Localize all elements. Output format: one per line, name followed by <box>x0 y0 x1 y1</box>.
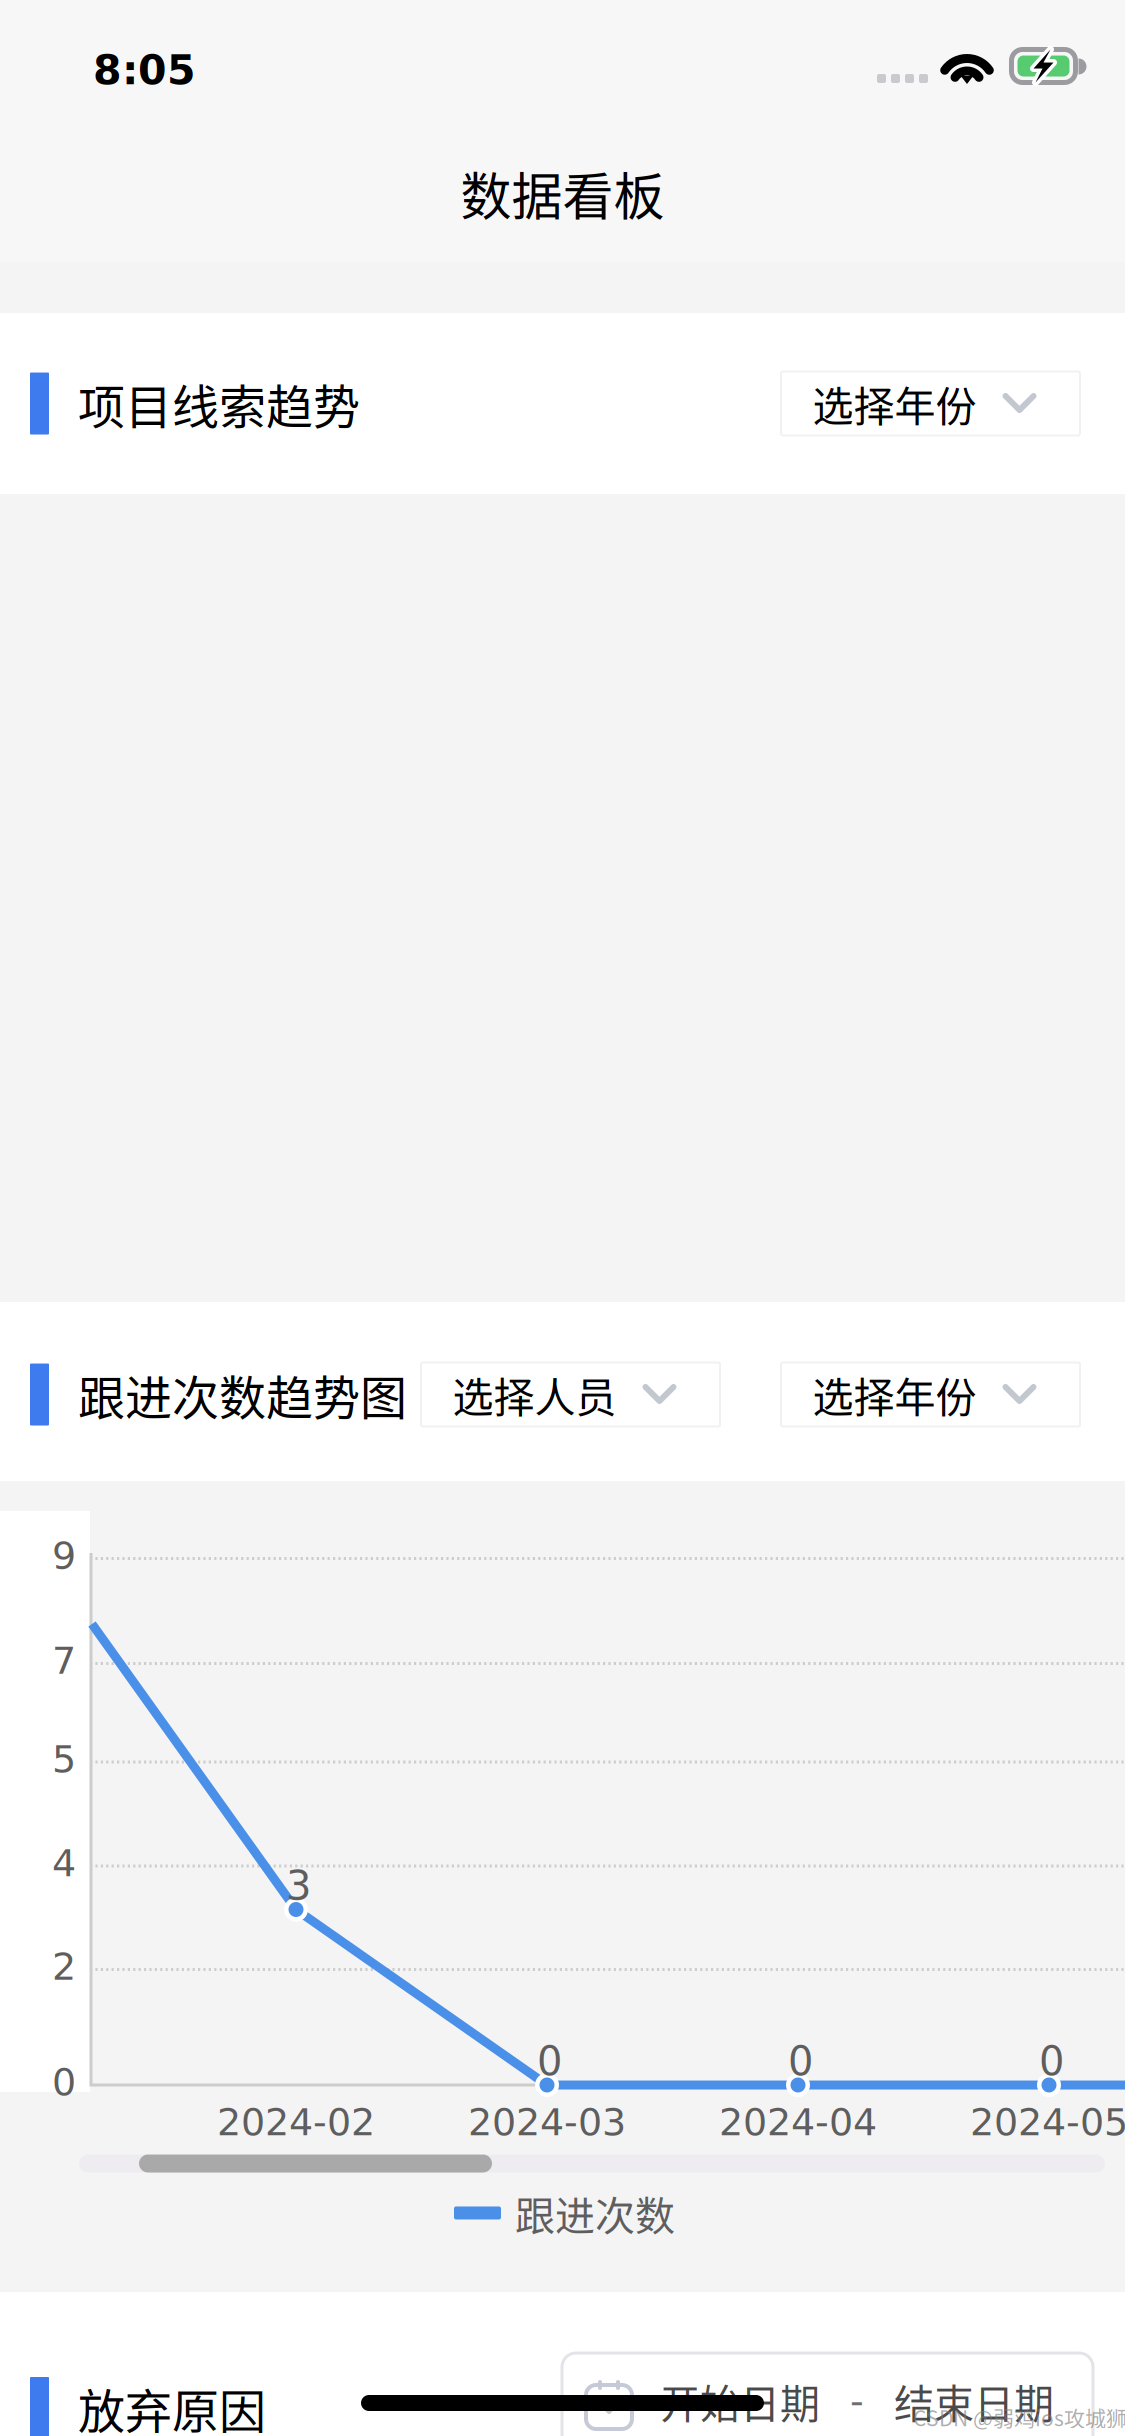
staticText: 放弃原因 <box>78 2374 266 2436</box>
button[interactable]: 开始日期 <box>562 2353 1093 2436</box>
staticText: 项目线索趋势 <box>78 369 360 438</box>
staticText: 0 <box>52 2060 76 2104</box>
staticText: 2024-05 <box>970 2100 1125 2144</box>
staticText: 2024-03 <box>468 2100 626 2144</box>
staticText: 2024-02 <box>217 2100 375 2144</box>
staticText: 结束日期 <box>894 2372 1054 2430</box>
staticText: 9 <box>52 1533 76 1578</box>
staticText: 跟进次数 <box>515 2184 675 2242</box>
staticText: 选择人员 <box>452 1365 616 1424</box>
staticText: CSDN @弱鸡ios攻城狮 <box>913 2402 1125 2432</box>
staticText: - <box>850 2379 864 2423</box>
staticText: 7 <box>52 1638 76 1683</box>
staticText: 8:05 <box>93 46 196 94</box>
staticText: 0 <box>788 2038 813 2085</box>
staticText: 2 <box>52 1944 76 1989</box>
staticText: 选择年份 <box>812 374 976 433</box>
staticText: 2024-04 <box>719 2100 877 2144</box>
staticText: 4 <box>52 1841 76 1885</box>
staticText: 开始日期 <box>660 2372 820 2430</box>
staticText: 数据看板 <box>460 156 664 230</box>
button[interactable]: 选择年份 <box>781 1362 1080 1426</box>
button[interactable]: 选择人员 <box>421 1362 720 1426</box>
staticText: 3 <box>286 1862 311 1909</box>
staticText: 跟进次数趋势图 <box>78 1360 407 1429</box>
staticText: 0 <box>537 2038 562 2085</box>
button[interactable]: 选择年份 <box>781 371 1080 435</box>
staticText: 5 <box>52 1737 76 1781</box>
staticText: 0 <box>1039 2038 1064 2085</box>
staticText: 选择年份 <box>812 1365 976 1424</box>
